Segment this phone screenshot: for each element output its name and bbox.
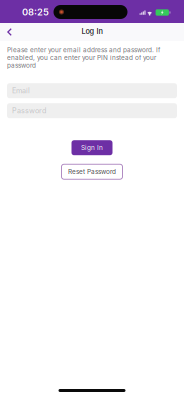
staticText: Email	[12, 86, 30, 95]
staticText: Sign In	[81, 144, 103, 152]
staticText: Password	[12, 106, 46, 115]
staticText: Reset Password	[68, 168, 116, 176]
staticText: 08:25	[22, 6, 49, 18]
button[interactable]: Back	[0, 23, 18, 41]
staticText: Please enter your email address and pass…	[7, 46, 160, 69]
button[interactable]: Sign In	[71, 140, 112, 155]
staticText: Log In	[81, 27, 102, 36]
button[interactable]: Reset Password	[61, 164, 122, 179]
